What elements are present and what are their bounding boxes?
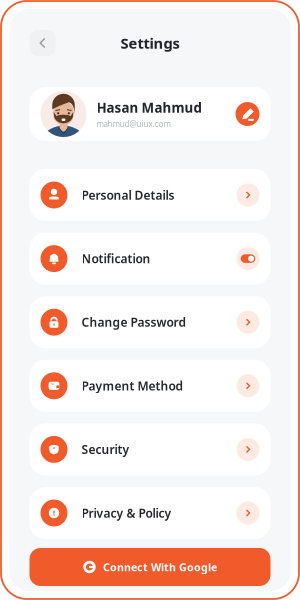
button[interactable]: Change Password — [29, 296, 270, 348]
button[interactable]: Personal Details — [29, 169, 270, 221]
button[interactable]: Hasan Mahmud — [29, 87, 270, 141]
staticText: mahmud@uiux.com — [96, 118, 170, 129]
staticText: Change Password — [81, 314, 186, 330]
button[interactable]: Notification — [29, 233, 270, 285]
staticText: Security — [81, 441, 129, 457]
staticText: Connect With Google — [103, 560, 217, 574]
staticText: Privacy & Policy — [81, 505, 171, 521]
staticText: Payment Method — [81, 378, 183, 394]
button[interactable]: Security — [29, 423, 270, 475]
button[interactable]: Back — [29, 30, 55, 56]
button[interactable]: Connect With Google — [29, 548, 270, 586]
staticText: Settings — [120, 33, 179, 53]
staticText: Hasan Mahmud — [96, 99, 201, 116]
staticText: Personal Details — [81, 187, 174, 203]
staticText: Notification — [81, 251, 150, 266]
button[interactable]: Privacy & Policy — [29, 487, 270, 539]
button[interactable]: Payment Method — [29, 360, 270, 412]
button[interactable]: Edit profile — [235, 102, 259, 126]
